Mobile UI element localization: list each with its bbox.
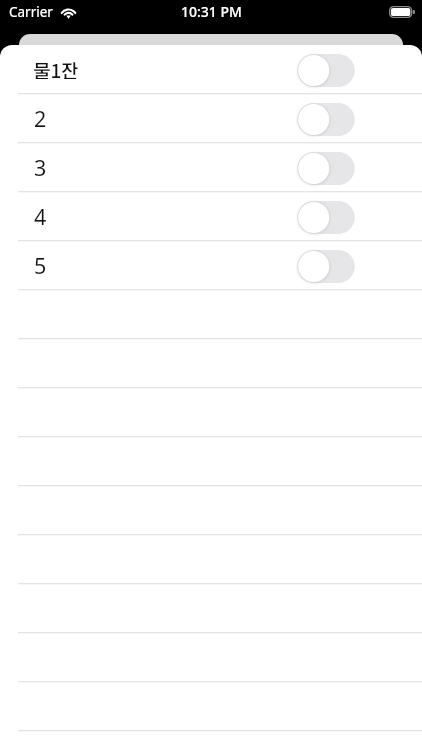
button[interactable]: 2	[0, 94, 422, 143]
staticText: 4	[34, 202, 47, 231]
staticText: 5	[34, 251, 47, 280]
button[interactable]: Toggle	[295, 247, 357, 285]
staticText: Carrier	[9, 3, 53, 21]
button[interactable]: 물1잔	[0, 45, 422, 94]
button[interactable]: Toggle	[295, 198, 357, 236]
button[interactable]: Toggle	[295, 100, 357, 138]
button[interactable]: Toggle	[295, 149, 357, 187]
button[interactable]: 5	[0, 241, 422, 290]
staticText: 물1잔	[33, 56, 79, 84]
staticText: 10:31 PM	[181, 2, 242, 21]
button[interactable]: 4	[0, 192, 422, 241]
button[interactable]: 3	[0, 143, 422, 192]
staticText: 2	[34, 104, 47, 133]
button[interactable]: Toggle	[295, 51, 357, 89]
staticText: 3	[34, 153, 47, 182]
